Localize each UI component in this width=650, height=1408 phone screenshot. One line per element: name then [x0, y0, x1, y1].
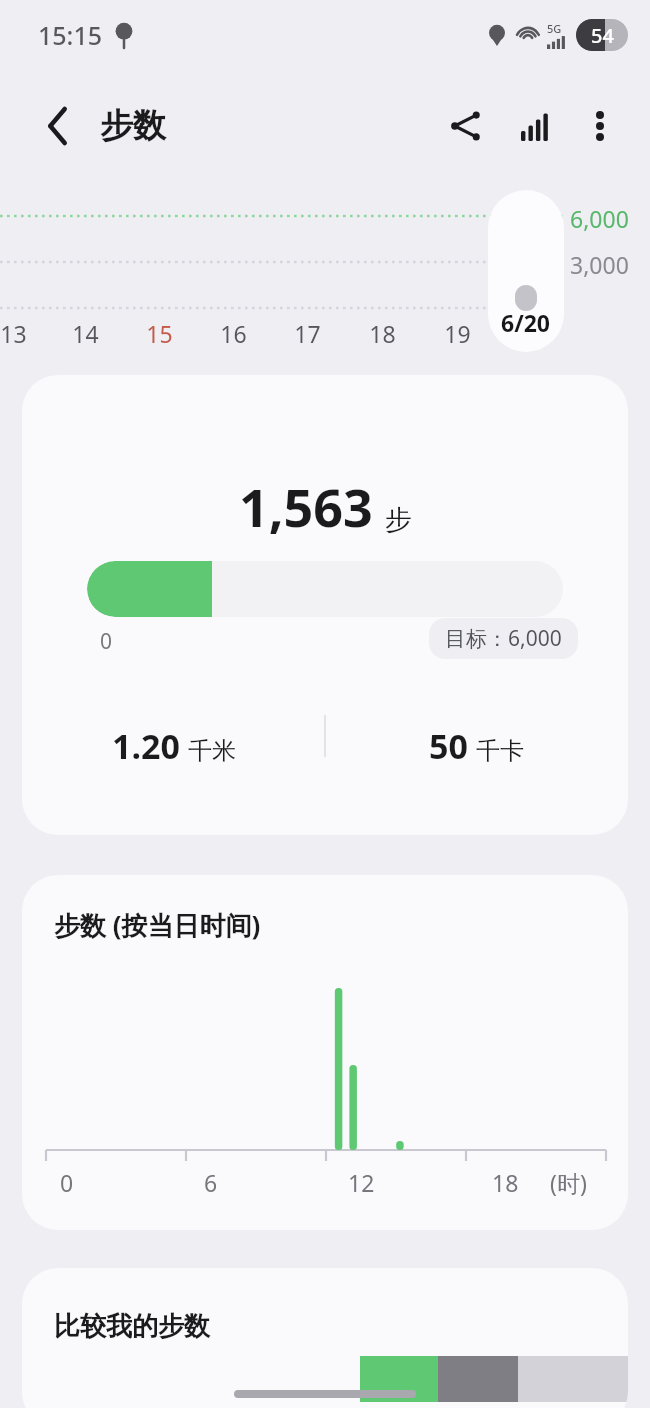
- staticText: 15: [146, 318, 173, 349]
- staticText: 1.20: [112, 723, 180, 769]
- button[interactable]: 14: [66, 316, 104, 350]
- staticText: 5G: [547, 21, 562, 36]
- staticText: 目标：6,000: [445, 624, 562, 653]
- button[interactable]: 1,563: [22, 375, 628, 835]
- button[interactable]: More options: [572, 98, 628, 154]
- button[interactable]: 15: [140, 316, 178, 350]
- staticText: 18: [492, 1167, 519, 1198]
- staticText: 13: [0, 318, 27, 349]
- staticText: 6,000: [570, 203, 629, 234]
- staticText: 千米: [188, 736, 236, 766]
- staticText: (时): [550, 1167, 587, 1198]
- staticText: 千卡: [476, 736, 524, 766]
- staticText: 0: [100, 627, 113, 656]
- staticText: 1,563: [239, 471, 373, 542]
- staticText: 3,000: [570, 249, 629, 280]
- staticText: 6: [204, 1167, 218, 1198]
- button[interactable]: 13: [0, 316, 32, 350]
- staticText: 17: [294, 318, 321, 349]
- button[interactable]: Back: [30, 98, 86, 154]
- staticText: 0: [60, 1167, 74, 1198]
- staticText: 16: [220, 318, 247, 349]
- staticText: 6/20: [501, 307, 551, 338]
- staticText: 步数 (按当日时间): [54, 907, 261, 943]
- staticText: 12: [348, 1167, 375, 1198]
- button[interactable]: 19: [438, 316, 476, 350]
- staticText: 步数: [100, 105, 166, 147]
- staticText: 步: [385, 503, 412, 537]
- button[interactable]: 18: [363, 316, 401, 350]
- staticText: 50: [429, 723, 468, 769]
- button[interactable]: Trends: [506, 96, 566, 156]
- button[interactable]: 17: [288, 316, 326, 350]
- button[interactable]: 16: [214, 316, 252, 350]
- staticText: 54: [591, 22, 614, 49]
- staticText: 15:15: [38, 18, 103, 52]
- staticText: 18: [369, 318, 396, 349]
- button[interactable]: Share: [436, 96, 496, 156]
- staticText: 14: [72, 318, 99, 349]
- button[interactable]: 6/20: [488, 190, 564, 352]
- staticText: 19: [444, 318, 471, 349]
- button[interactable]: 步数 (按当日时间): [22, 875, 628, 1230]
- staticText: 比较我的步数: [54, 1310, 210, 1343]
- button[interactable]: 比较我的步数: [22, 1268, 628, 1408]
